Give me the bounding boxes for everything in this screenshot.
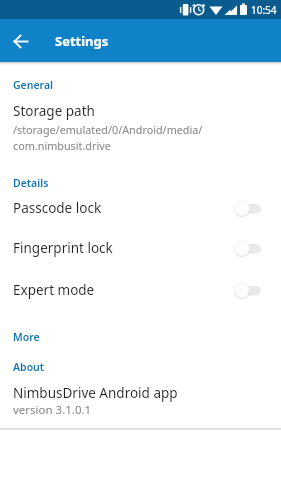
- staticText: Expert mode: [13, 281, 95, 299]
- staticText: Settings: [55, 32, 109, 50]
- staticText: version 3.1.0.1: [13, 402, 92, 418]
- staticText: 10:54: [251, 3, 277, 17]
- staticText: Fingerprint lock: [13, 239, 113, 257]
- staticText: Details: [13, 176, 49, 190]
- staticText: /storage/emulated/0/Android/media/: [13, 122, 203, 137]
- staticText: More: [13, 330, 40, 344]
- button[interactable]: Fingerprint lock: [0, 228, 281, 268]
- button[interactable]: Expert mode: [0, 270, 281, 310]
- button[interactable]: [8, 28, 34, 54]
- staticText: com.nimbusit.drive: [13, 138, 111, 153]
- staticText: General: [13, 78, 54, 92]
- staticText: About: [13, 360, 45, 374]
- staticText: Passcode lock: [13, 199, 102, 217]
- button[interactable]: Passcode lock: [0, 188, 281, 228]
- staticText: NimbusDrive Android app: [13, 384, 178, 402]
- button[interactable]: NimbusDrive Android app: [0, 380, 281, 424]
- staticText: Storage path: [13, 102, 95, 120]
- button[interactable]: Storage path: [0, 96, 281, 152]
